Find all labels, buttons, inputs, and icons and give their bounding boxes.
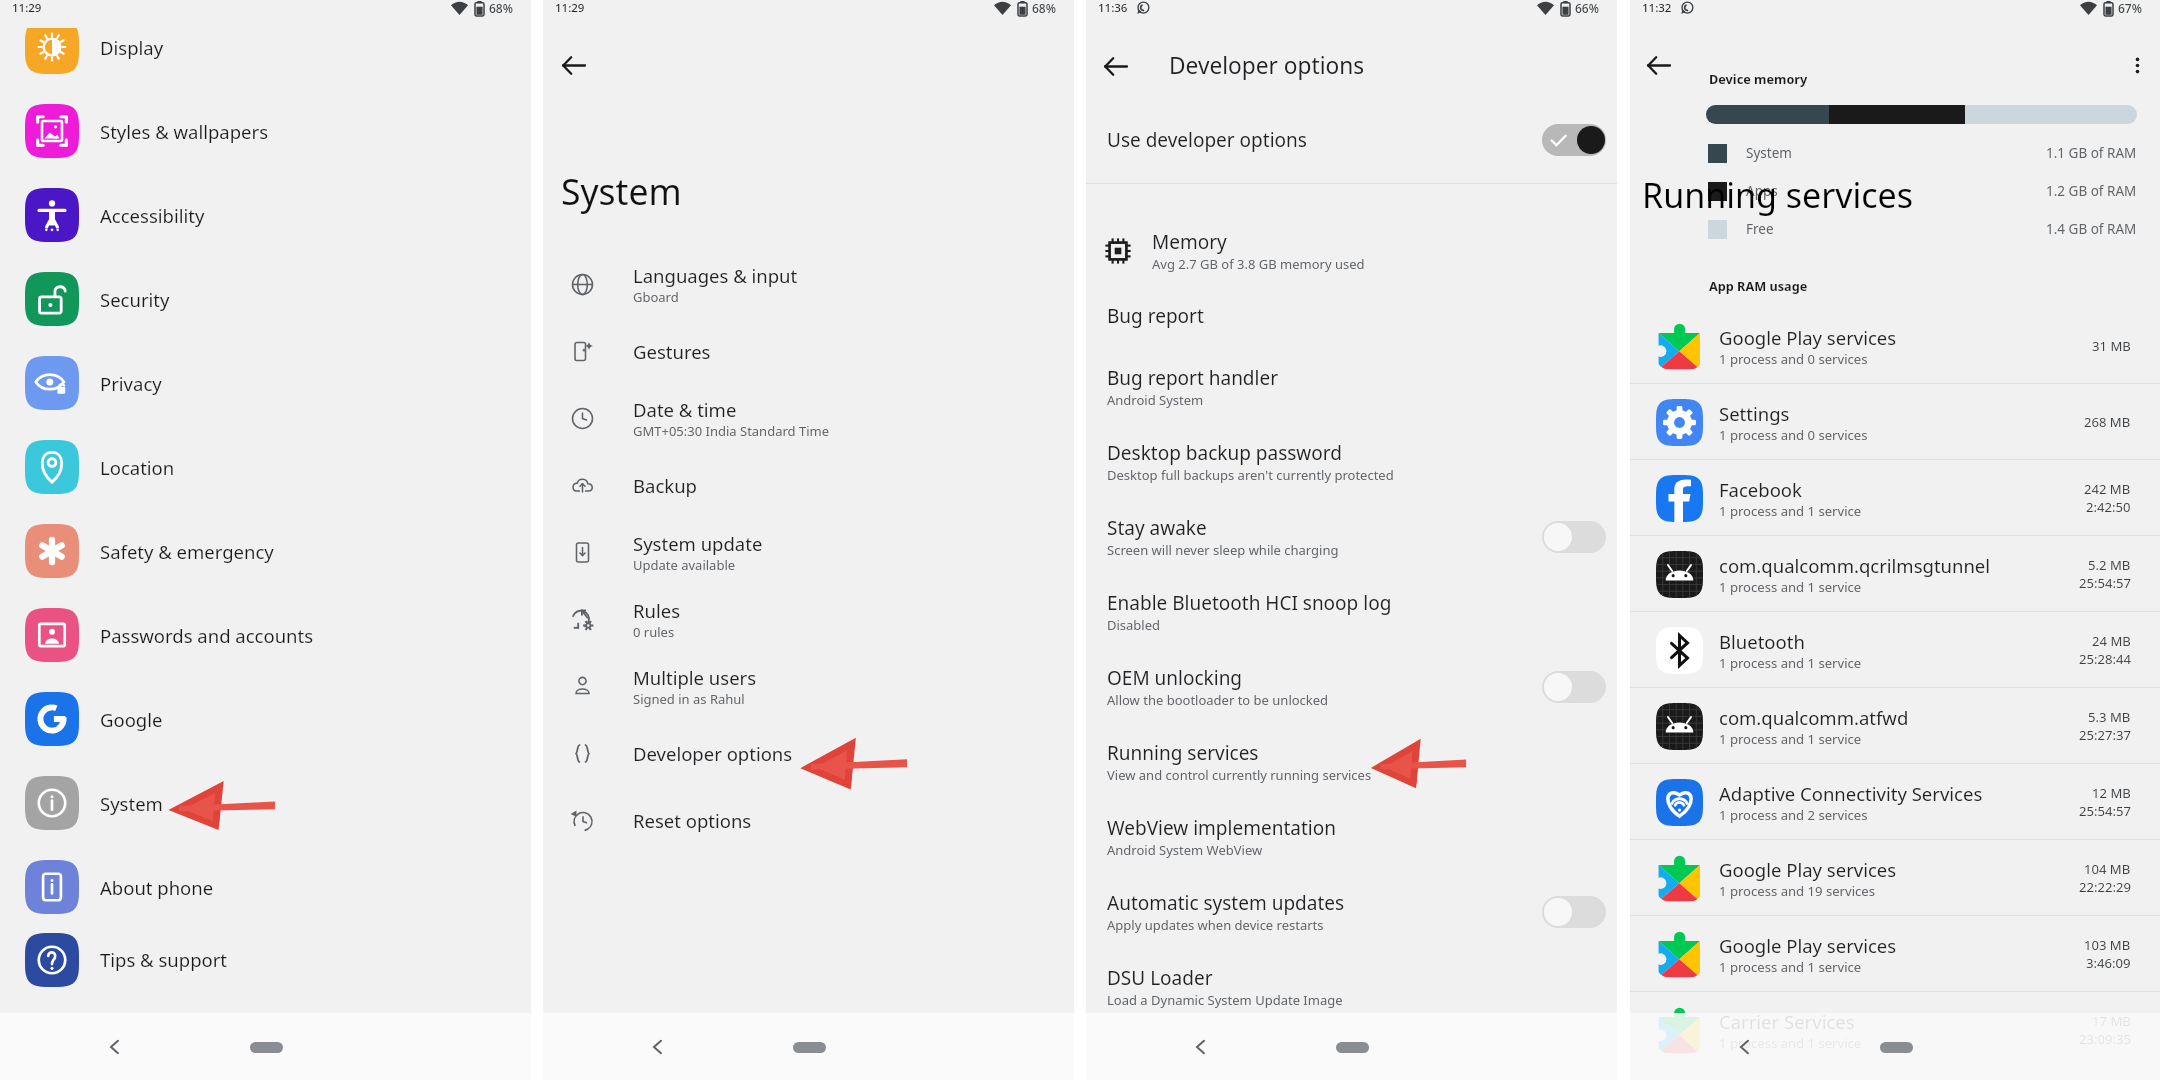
staticText: Bug report [1107, 303, 1204, 329]
staticText: DSU Loader [1107, 965, 1213, 991]
staticText: 25:27:37 [2079, 726, 2131, 744]
staticText: 1 process and 2 services [1719, 806, 1868, 824]
button[interactable]: Languages & input [543, 251, 1074, 318]
button[interactable]: Carrier Services [1630, 992, 2160, 1068]
staticText: 12 MB [2092, 784, 2131, 802]
button[interactable]: Styles & wallpapers [0, 89, 531, 173]
staticText: 68% [1032, 0, 1056, 16]
button[interactable]: Google Play services [1630, 916, 2160, 992]
staticText: Tips & support [100, 947, 228, 972]
button[interactable]: Reset options [543, 787, 1074, 854]
button[interactable]: Back [1730, 1033, 1758, 1061]
staticText: 1 process and 1 service [1719, 654, 1862, 672]
button[interactable]: More options [2123, 51, 2151, 79]
staticText: Reset options [633, 808, 752, 833]
staticText: System [100, 791, 163, 816]
staticText: Stay awake [1107, 515, 1207, 541]
button[interactable]: Privacy [0, 341, 531, 425]
button[interactable]: Developer options [543, 720, 1074, 787]
button[interactable]: Bluetooth [1630, 612, 2160, 688]
button[interactable]: Back [559, 51, 587, 79]
staticText: Android System WebView [1107, 841, 1263, 859]
button[interactable]: Google [0, 677, 531, 761]
staticText: 1 process and 1 service [1719, 730, 1862, 748]
staticText: Google Play services [1719, 325, 1897, 350]
staticText: Developer options [1169, 50, 1365, 81]
staticText: Google Play services [1719, 933, 1897, 958]
staticText: 1 process and 1 service [1719, 578, 1862, 596]
staticText: com.qualcomm.qcrilmsgtunnel [1719, 553, 1991, 578]
staticText: 1.1 GB of RAM [2046, 144, 2137, 162]
button[interactable]: Security [0, 257, 531, 341]
button[interactable]: Home [250, 1042, 283, 1053]
staticText: Update available [633, 556, 736, 574]
button[interactable]: Automatic system updates [1086, 874, 1617, 949]
button[interactable]: Use developer options [1086, 112, 1617, 168]
button[interactable]: Passwords and accounts [0, 593, 531, 677]
button[interactable]: Back [643, 1033, 671, 1061]
button[interactable]: Back [1186, 1033, 1214, 1061]
staticText: Languages & input [633, 263, 798, 288]
staticText: Automatic system updates [1107, 890, 1345, 916]
button[interactable]: Memory [1086, 223, 1617, 279]
button[interactable]: Automatic system updates, off [1542, 896, 1606, 928]
button[interactable]: Bug report [1086, 283, 1617, 349]
button[interactable]: Adaptive Connectivity Services [1630, 764, 2160, 840]
staticText: Signed in as Rahul [633, 690, 745, 708]
staticText: Screen will never sleep while charging [1107, 541, 1339, 559]
staticText: WebView implementation [1107, 815, 1336, 841]
staticText: 1 process and 1 service [1719, 502, 1862, 520]
button[interactable]: Desktop backup password [1086, 424, 1617, 499]
button[interactable]: Safety & emergency [0, 509, 531, 593]
button[interactable]: Back [1644, 51, 1672, 79]
button[interactable]: Home [793, 1042, 826, 1053]
button[interactable]: Google Play services [1630, 840, 2160, 916]
button[interactable]: Facebook [1630, 460, 2160, 536]
staticText: Running services [1642, 172, 1914, 218]
staticText: Google Play services [1719, 857, 1897, 882]
button[interactable]: Stay awake [1086, 499, 1617, 574]
button[interactable]: Bug report handler [1086, 349, 1617, 424]
staticText: Safety & emergency [100, 539, 274, 564]
staticText: 1 process and 1 service [1719, 1034, 1862, 1052]
button[interactable]: Stay awake, off [1542, 521, 1606, 553]
button[interactable]: OEM unlocking [1086, 649, 1617, 724]
button[interactable]: About phone [0, 845, 531, 929]
staticText: Gestures [633, 339, 711, 364]
staticText: 1 process and 0 services [1719, 350, 1868, 368]
button[interactable]: Home [1336, 1042, 1369, 1053]
staticText: 11:29 [12, 0, 42, 16]
button[interactable]: Multiple users [543, 653, 1074, 720]
button[interactable]: Back [100, 1033, 128, 1061]
staticText: Desktop backup password [1107, 440, 1342, 466]
button[interactable]: Enable Bluetooth HCI snoop log [1086, 574, 1617, 649]
button[interactable]: Running services [1086, 724, 1617, 799]
button[interactable]: Date & time [543, 385, 1074, 452]
button[interactable]: Tips & support [0, 929, 531, 990]
staticText: 31 MB [2092, 337, 2131, 355]
button[interactable]: Accessibility [0, 173, 531, 257]
button[interactable]: System [0, 761, 531, 845]
button[interactable]: Location [0, 425, 531, 509]
button[interactable]: DSU Loader [1086, 949, 1617, 1024]
button[interactable]: Back [1101, 52, 1129, 80]
button[interactable]: com.qualcomm.qcrilmsgtunnel [1630, 536, 2160, 612]
button[interactable]: WebView implementation [1086, 799, 1617, 874]
staticText: Google [100, 707, 163, 732]
button[interactable]: com.qualcomm.atfwd [1630, 688, 2160, 764]
staticText: 3:46:09 [2086, 954, 2131, 972]
button[interactable]: Use developer options, on [1542, 124, 1606, 156]
button[interactable]: Google Play services [1630, 308, 2160, 384]
staticText: 25:54:57 [2079, 574, 2131, 592]
button[interactable]: Gestures [543, 318, 1074, 385]
staticText: Use developer options [1107, 127, 1307, 153]
button[interactable]: Home [1880, 1042, 1913, 1053]
staticText: Desktop full backups aren't currently pr… [1107, 466, 1394, 484]
button[interactable]: Backup [543, 452, 1074, 519]
button[interactable]: OEM unlocking, off [1542, 671, 1606, 703]
button[interactable]: System update [543, 519, 1074, 586]
button[interactable]: Settings [1630, 384, 2160, 460]
button[interactable]: Display [0, 28, 531, 89]
button[interactable]: Rules [543, 586, 1074, 653]
staticText: 25:28:44 [2079, 650, 2131, 668]
